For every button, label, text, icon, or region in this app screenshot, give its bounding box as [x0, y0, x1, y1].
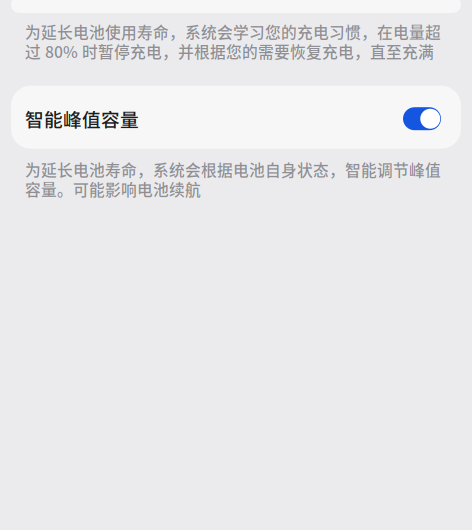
- staticText: 为延长电池使用寿命，系统会学习您的充电习惯，在电量超过 80% 时暂停充电，并根…: [25, 22, 441, 61]
- staticText: 智能峰值容量: [25, 105, 139, 132]
- staticText: 为延长电池寿命，系统会根据电池自身状态，智能调节峰值容量。可能影响电池续航: [25, 160, 441, 198]
- button[interactable]: 智能峰值容量: [11, 86, 461, 149]
